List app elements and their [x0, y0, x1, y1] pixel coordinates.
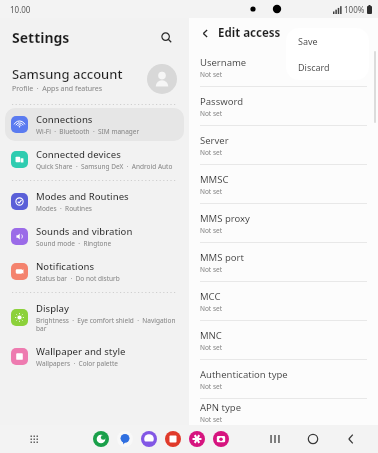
button[interactable]: Connected devices: [5, 143, 184, 176]
staticText: Connected devices: [36, 148, 121, 161]
button[interactable]: Samsung account: [0, 56, 189, 102]
button[interactable]: Authentication type: [189, 360, 378, 398]
staticText: Profile · Apps and features: [12, 84, 103, 94]
button[interactable]: MNC: [189, 321, 378, 359]
button[interactable]: MCC: [189, 282, 378, 320]
staticText: Connections: [36, 113, 93, 126]
button[interactable]: MMS proxy: [189, 204, 378, 242]
button[interactable]: Discard: [286, 54, 369, 80]
staticText: Not set: [200, 382, 223, 391]
button[interactable]: Back: [342, 430, 360, 448]
button[interactable]: Sounds and vibration: [5, 220, 184, 253]
staticText: Brightness · Eye comfort shield · Naviga…: [36, 316, 178, 333]
staticText: Password: [200, 95, 243, 108]
button[interactable]: Notes: [165, 431, 181, 447]
staticText: Not set: [200, 70, 223, 79]
staticText: Not set: [200, 415, 223, 424]
staticText: MCC: [200, 290, 221, 303]
staticText: Status bar · Do not disturb: [36, 274, 120, 283]
staticText: Settings: [12, 28, 70, 47]
button[interactable]: Username: [189, 48, 378, 86]
staticText: Save: [298, 35, 318, 47]
staticText: Not set: [200, 304, 223, 313]
staticText: Wallpaper and style: [36, 345, 126, 358]
staticText: Wallpapers · Color palette: [36, 359, 118, 368]
staticText: Modes and Routines: [36, 190, 129, 203]
button[interactable]: Display: [5, 297, 184, 338]
button[interactable]: Notifications: [5, 255, 184, 288]
button[interactable]: APN type: [189, 399, 378, 425]
button[interactable]: MMSC: [189, 165, 378, 203]
staticText: 10.00: [10, 4, 31, 15]
button[interactable]: Home: [304, 430, 322, 448]
staticText: Authentication type: [200, 368, 288, 381]
staticText: 100%: [344, 4, 365, 15]
staticText: Username: [200, 56, 247, 69]
staticText: Quick Share · Samsung DeX · Android Auto: [36, 162, 173, 171]
button[interactable]: Internet: [141, 431, 157, 447]
staticText: Not set: [200, 343, 223, 352]
button[interactable]: Password: [189, 87, 378, 125]
button[interactable]: Save: [286, 28, 369, 54]
button[interactable]: Gallery: [189, 431, 205, 447]
staticText: Wi-Fi · Bluetooth · SIM manager: [36, 127, 140, 136]
staticText: Not set: [200, 226, 223, 235]
staticText: Not set: [200, 187, 223, 196]
button[interactable]: Camera: [213, 431, 229, 447]
staticText: Discard: [298, 61, 330, 73]
button[interactable]: Phone: [93, 431, 109, 447]
staticText: Not set: [200, 109, 223, 118]
staticText: Not set: [200, 265, 223, 274]
staticText: MMS proxy: [200, 212, 250, 225]
staticText: Server: [200, 134, 229, 147]
button[interactable]: Search: [155, 26, 177, 48]
button[interactable]: Recents: [266, 430, 284, 448]
staticText: APN type: [200, 401, 241, 414]
button[interactable]: Messages: [117, 431, 133, 447]
button[interactable]: Back: [196, 24, 214, 42]
button[interactable]: Wallpaper and style: [5, 340, 184, 373]
staticText: Display: [36, 302, 70, 315]
button[interactable]: Modes and Routines: [5, 185, 184, 218]
staticText: Sound mode · Ringtone: [36, 239, 112, 248]
button[interactable]: Server: [189, 126, 378, 164]
button[interactable]: MMS port: [189, 243, 378, 281]
staticText: MMS port: [200, 251, 244, 264]
button[interactable]: Apps: [26, 431, 42, 447]
staticText: Not set: [200, 148, 223, 157]
staticText: Notifications: [36, 260, 95, 273]
staticText: Samsung account: [12, 65, 123, 83]
staticText: MMSC: [200, 173, 229, 186]
staticText: Modes · Routines: [36, 204, 92, 213]
staticText: Sounds and vibration: [36, 225, 133, 238]
staticText: MNC: [200, 329, 222, 342]
button[interactable]: Connections: [5, 108, 184, 141]
staticText: Edit access: [218, 25, 281, 41]
